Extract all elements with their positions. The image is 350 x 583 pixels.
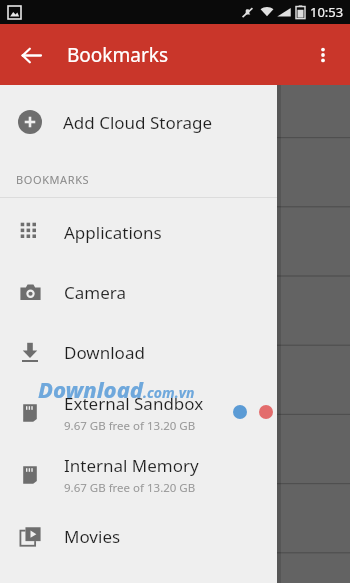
staticText: Bookmarks: [67, 42, 169, 68]
staticText: 9.67 GB free of 13.20 GB: [64, 480, 196, 496]
staticText: Download: [64, 341, 145, 364]
staticText: Download.com.vn: [38, 374, 195, 404]
button[interactable]: Download: [0, 322, 277, 382]
staticText: 9.67 GB free of 13.20 GB: [64, 418, 196, 434]
button[interactable]: External Sandbox: [0, 382, 277, 444]
staticText: BOOKMARKS: [16, 172, 90, 187]
staticText: Movies: [64, 525, 121, 548]
button[interactable]: Back: [10, 34, 52, 76]
staticText: Internal Memory: [64, 454, 199, 477]
button[interactable]: Camera: [0, 262, 277, 322]
button[interactable]: Internal Memory: [0, 444, 277, 506]
staticText: Camera: [64, 281, 126, 304]
button[interactable]: Applications: [0, 202, 277, 262]
button[interactable]: Movies: [0, 506, 277, 566]
staticText: Add Cloud Storage: [63, 111, 213, 134]
button[interactable]: Add Cloud Storage: [0, 93, 277, 151]
staticText: Applications: [64, 221, 162, 244]
staticText: External Sandbox: [64, 392, 204, 415]
staticText: 10:53: [310, 3, 344, 21]
button[interactable]: More options: [302, 34, 344, 76]
